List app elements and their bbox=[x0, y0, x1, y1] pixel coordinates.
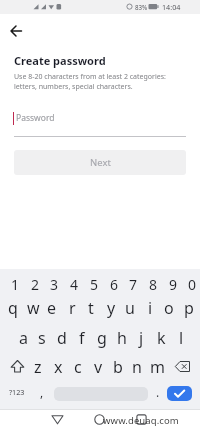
staticText: j bbox=[139, 327, 144, 349]
staticText: w bbox=[27, 297, 40, 319]
staticText: www.deuaq.com bbox=[103, 414, 179, 427]
staticText: v bbox=[94, 356, 103, 378]
staticText: 5 bbox=[90, 275, 99, 294]
staticText: Use 8-20 characters from at least 2 cate… bbox=[14, 72, 166, 92]
button[interactable]: o bbox=[158, 294, 180, 322]
staticText: e bbox=[47, 297, 57, 319]
button[interactable]: m bbox=[146, 353, 168, 381]
button[interactable]: 8 bbox=[142, 270, 164, 298]
button[interactable]: a bbox=[12, 324, 34, 352]
button[interactable] bbox=[131, 409, 152, 433]
button[interactable]: s bbox=[31, 324, 53, 352]
button[interactable]: Next bbox=[14, 150, 186, 175]
staticText: 6 bbox=[110, 275, 119, 294]
button[interactable]: c bbox=[67, 353, 89, 381]
button[interactable]: 9 bbox=[162, 270, 184, 298]
button[interactable]: 1 bbox=[4, 270, 26, 298]
button[interactable]: p bbox=[178, 294, 200, 322]
staticText: m bbox=[150, 356, 165, 378]
button[interactable]: 2 bbox=[24, 270, 46, 298]
button[interactable]: 6 bbox=[103, 270, 125, 298]
button[interactable]: n bbox=[126, 353, 148, 381]
button[interactable]: ?123 bbox=[4, 382, 30, 402]
button[interactable]: v bbox=[87, 353, 109, 381]
button[interactable] bbox=[8, 355, 27, 379]
button[interactable]: . bbox=[150, 381, 166, 403]
staticText: u bbox=[125, 297, 135, 319]
button[interactable]: 0 bbox=[181, 270, 200, 298]
button[interactable]: t bbox=[80, 294, 102, 322]
button[interactable] bbox=[173, 355, 193, 379]
staticText: d bbox=[57, 327, 67, 349]
button[interactable]: l bbox=[170, 324, 192, 352]
staticText: p bbox=[184, 297, 194, 319]
button[interactable]: 5 bbox=[83, 270, 105, 298]
button[interactable]: x bbox=[47, 353, 69, 381]
button[interactable]: b bbox=[107, 353, 129, 381]
staticText: 83% bbox=[135, 3, 148, 11]
staticText: 1 bbox=[11, 275, 20, 294]
staticText: Create password bbox=[14, 53, 106, 68]
button[interactable]: q bbox=[2, 294, 24, 322]
staticText: 2 bbox=[31, 275, 40, 294]
staticText: f bbox=[79, 327, 85, 349]
staticText: 4 bbox=[70, 275, 79, 294]
button[interactable]: 7 bbox=[122, 270, 144, 298]
staticText: Next bbox=[90, 156, 111, 169]
staticText: i bbox=[148, 297, 153, 319]
staticText: 8 bbox=[149, 275, 158, 294]
button[interactable]: w bbox=[22, 294, 44, 322]
staticText: 0 bbox=[188, 275, 197, 294]
button[interactable]: e bbox=[41, 294, 63, 322]
staticText: 7 bbox=[129, 275, 138, 294]
staticText: a bbox=[19, 327, 28, 349]
button[interactable]: d bbox=[51, 324, 73, 352]
staticText: r bbox=[69, 297, 76, 319]
button[interactable]: y bbox=[100, 294, 122, 322]
button[interactable]: 4 bbox=[63, 270, 85, 298]
button[interactable]: h bbox=[111, 324, 133, 352]
staticText: ?123 bbox=[9, 387, 25, 397]
button[interactable]: g bbox=[91, 324, 113, 352]
staticText: l bbox=[179, 327, 184, 349]
button[interactable]: 3 bbox=[43, 270, 65, 298]
staticText: 3 bbox=[50, 275, 59, 294]
button[interactable] bbox=[6, 22, 26, 40]
staticText: 9 bbox=[169, 275, 178, 294]
button[interactable]: i bbox=[139, 294, 161, 322]
button[interactable]: f bbox=[71, 324, 93, 352]
staticText: . bbox=[156, 384, 160, 400]
staticText: Password bbox=[16, 112, 55, 124]
button[interactable]: z bbox=[27, 353, 49, 381]
staticText: x bbox=[54, 356, 63, 378]
staticText: h bbox=[117, 327, 127, 349]
button[interactable]: u bbox=[119, 294, 141, 322]
button[interactable] bbox=[167, 386, 192, 401]
button[interactable]: j bbox=[130, 324, 152, 352]
button[interactable] bbox=[14, 108, 186, 134]
staticText: , bbox=[40, 384, 44, 400]
button[interactable]: , bbox=[34, 381, 50, 403]
button[interactable] bbox=[47, 409, 68, 433]
staticText: y bbox=[107, 297, 116, 319]
staticText: 14:04 bbox=[162, 2, 181, 12]
staticText: b bbox=[113, 356, 123, 378]
button[interactable]: r bbox=[61, 294, 83, 322]
staticText: n bbox=[132, 356, 142, 378]
button[interactable] bbox=[89, 409, 110, 433]
staticText: z bbox=[34, 356, 42, 378]
staticText: o bbox=[164, 297, 174, 319]
staticText: t bbox=[88, 297, 94, 319]
staticText: g bbox=[97, 327, 107, 349]
staticText: c bbox=[74, 356, 82, 378]
button[interactable]: k bbox=[150, 324, 172, 352]
staticText: s bbox=[38, 327, 46, 349]
staticText: q bbox=[8, 297, 18, 319]
staticText: k bbox=[157, 327, 166, 349]
